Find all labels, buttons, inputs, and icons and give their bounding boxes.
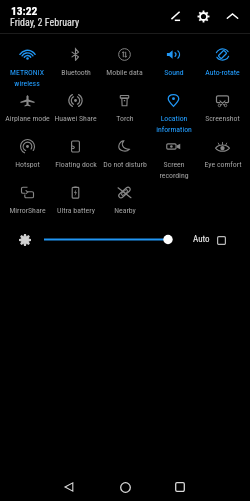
staticText: Eye comfort <box>204 160 242 169</box>
button[interactable]: Hotspot <box>3 138 51 184</box>
button[interactable]: Recents <box>166 473 194 501</box>
staticText: Auto-rotate <box>205 68 240 77</box>
button[interactable]: Floating dock <box>51 138 100 184</box>
button[interactable]: Collapse <box>218 5 246 27</box>
button[interactable]: Bluetooth <box>51 46 100 92</box>
button[interactable]: Auto brightness <box>214 233 228 247</box>
staticText: Location information <box>156 114 192 133</box>
button[interactable]: Back <box>55 473 83 501</box>
staticText: Screenshot <box>205 114 240 123</box>
staticText: 13:22 <box>11 4 38 17</box>
button[interactable]: METRONIX wireless <box>3 46 51 92</box>
button[interactable]: Sound <box>149 46 198 92</box>
staticText: Floating dock <box>55 160 97 169</box>
button[interactable]: Screenshot <box>198 92 247 138</box>
button[interactable]: Mobile data <box>100 46 149 92</box>
button[interactable]: Huawei Share <box>51 92 100 138</box>
staticText: METRONIX wireless <box>10 68 44 87</box>
staticText: Sound <box>164 68 184 77</box>
button[interactable]: Screen recording <box>149 138 198 184</box>
staticText: Screen recording <box>159 160 189 179</box>
staticText: Torch <box>116 114 134 123</box>
button[interactable]: Brightness <box>40 231 180 248</box>
button[interactable]: Do not disturb <box>100 138 149 184</box>
button[interactable]: Airplane mode <box>3 92 51 138</box>
button[interactable]: Settings <box>189 5 218 27</box>
staticText: Nearby <box>114 206 136 215</box>
staticText: Auto <box>193 234 210 245</box>
staticText: Do not disturb <box>103 160 147 169</box>
button[interactable]: Nearby <box>100 184 149 230</box>
staticText: Airplane mode <box>5 114 50 123</box>
button[interactable]: Auto-rotate <box>198 46 247 92</box>
staticText: Friday, 2 February <box>10 17 80 29</box>
button[interactable]: MirrorShare <box>3 184 51 230</box>
button[interactable]: Location information <box>149 92 198 138</box>
button[interactable]: Home <box>111 473 139 501</box>
staticText: MirrorShare <box>9 206 46 215</box>
staticText: Ultra battery <box>57 206 95 215</box>
button[interactable]: Eye comfort <box>198 138 247 184</box>
staticText: Bluetooth <box>61 68 91 77</box>
button[interactable]: Ultra battery <box>51 184 100 230</box>
button[interactable]: Torch <box>100 92 149 138</box>
staticText: Huawei Share <box>54 114 97 123</box>
staticText: Hotspot <box>15 160 40 169</box>
staticText: Mobile data <box>106 68 143 77</box>
button[interactable]: Edit <box>163 5 189 27</box>
